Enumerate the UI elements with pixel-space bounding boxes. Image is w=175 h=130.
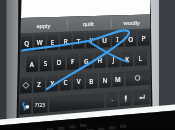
button[interactable]: Swype keyboard photo bbox=[0, 0, 175, 130]
